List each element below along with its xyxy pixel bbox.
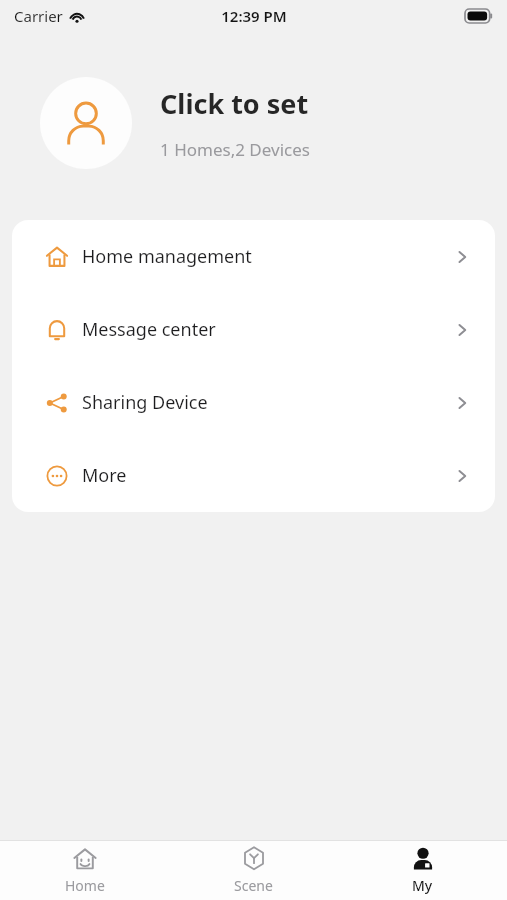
- staticText: Home management: [82, 244, 252, 269]
- staticText: Sharing Device: [82, 390, 208, 415]
- button[interactable]: Click to set: [0, 77, 507, 169]
- button[interactable]: Sharing Device: [12, 366, 495, 439]
- staticText: Click to set: [160, 85, 309, 122]
- staticText: Home: [65, 876, 105, 895]
- staticText: My: [412, 876, 433, 895]
- staticText: Message center: [82, 317, 216, 342]
- button[interactable]: Home management: [12, 220, 495, 293]
- button[interactable]: Home: [0, 841, 169, 900]
- staticText: More: [82, 463, 127, 488]
- button[interactable]: Scene: [169, 841, 338, 900]
- button[interactable]: Message center: [12, 293, 495, 366]
- button[interactable]: My: [338, 841, 507, 900]
- staticText: 12:39 PM: [221, 6, 287, 26]
- staticText: Carrier: [14, 6, 63, 26]
- button[interactable]: More: [12, 439, 495, 512]
- staticText: 1 Homes,2 Devices: [160, 138, 310, 161]
- staticText: Scene: [234, 876, 273, 895]
